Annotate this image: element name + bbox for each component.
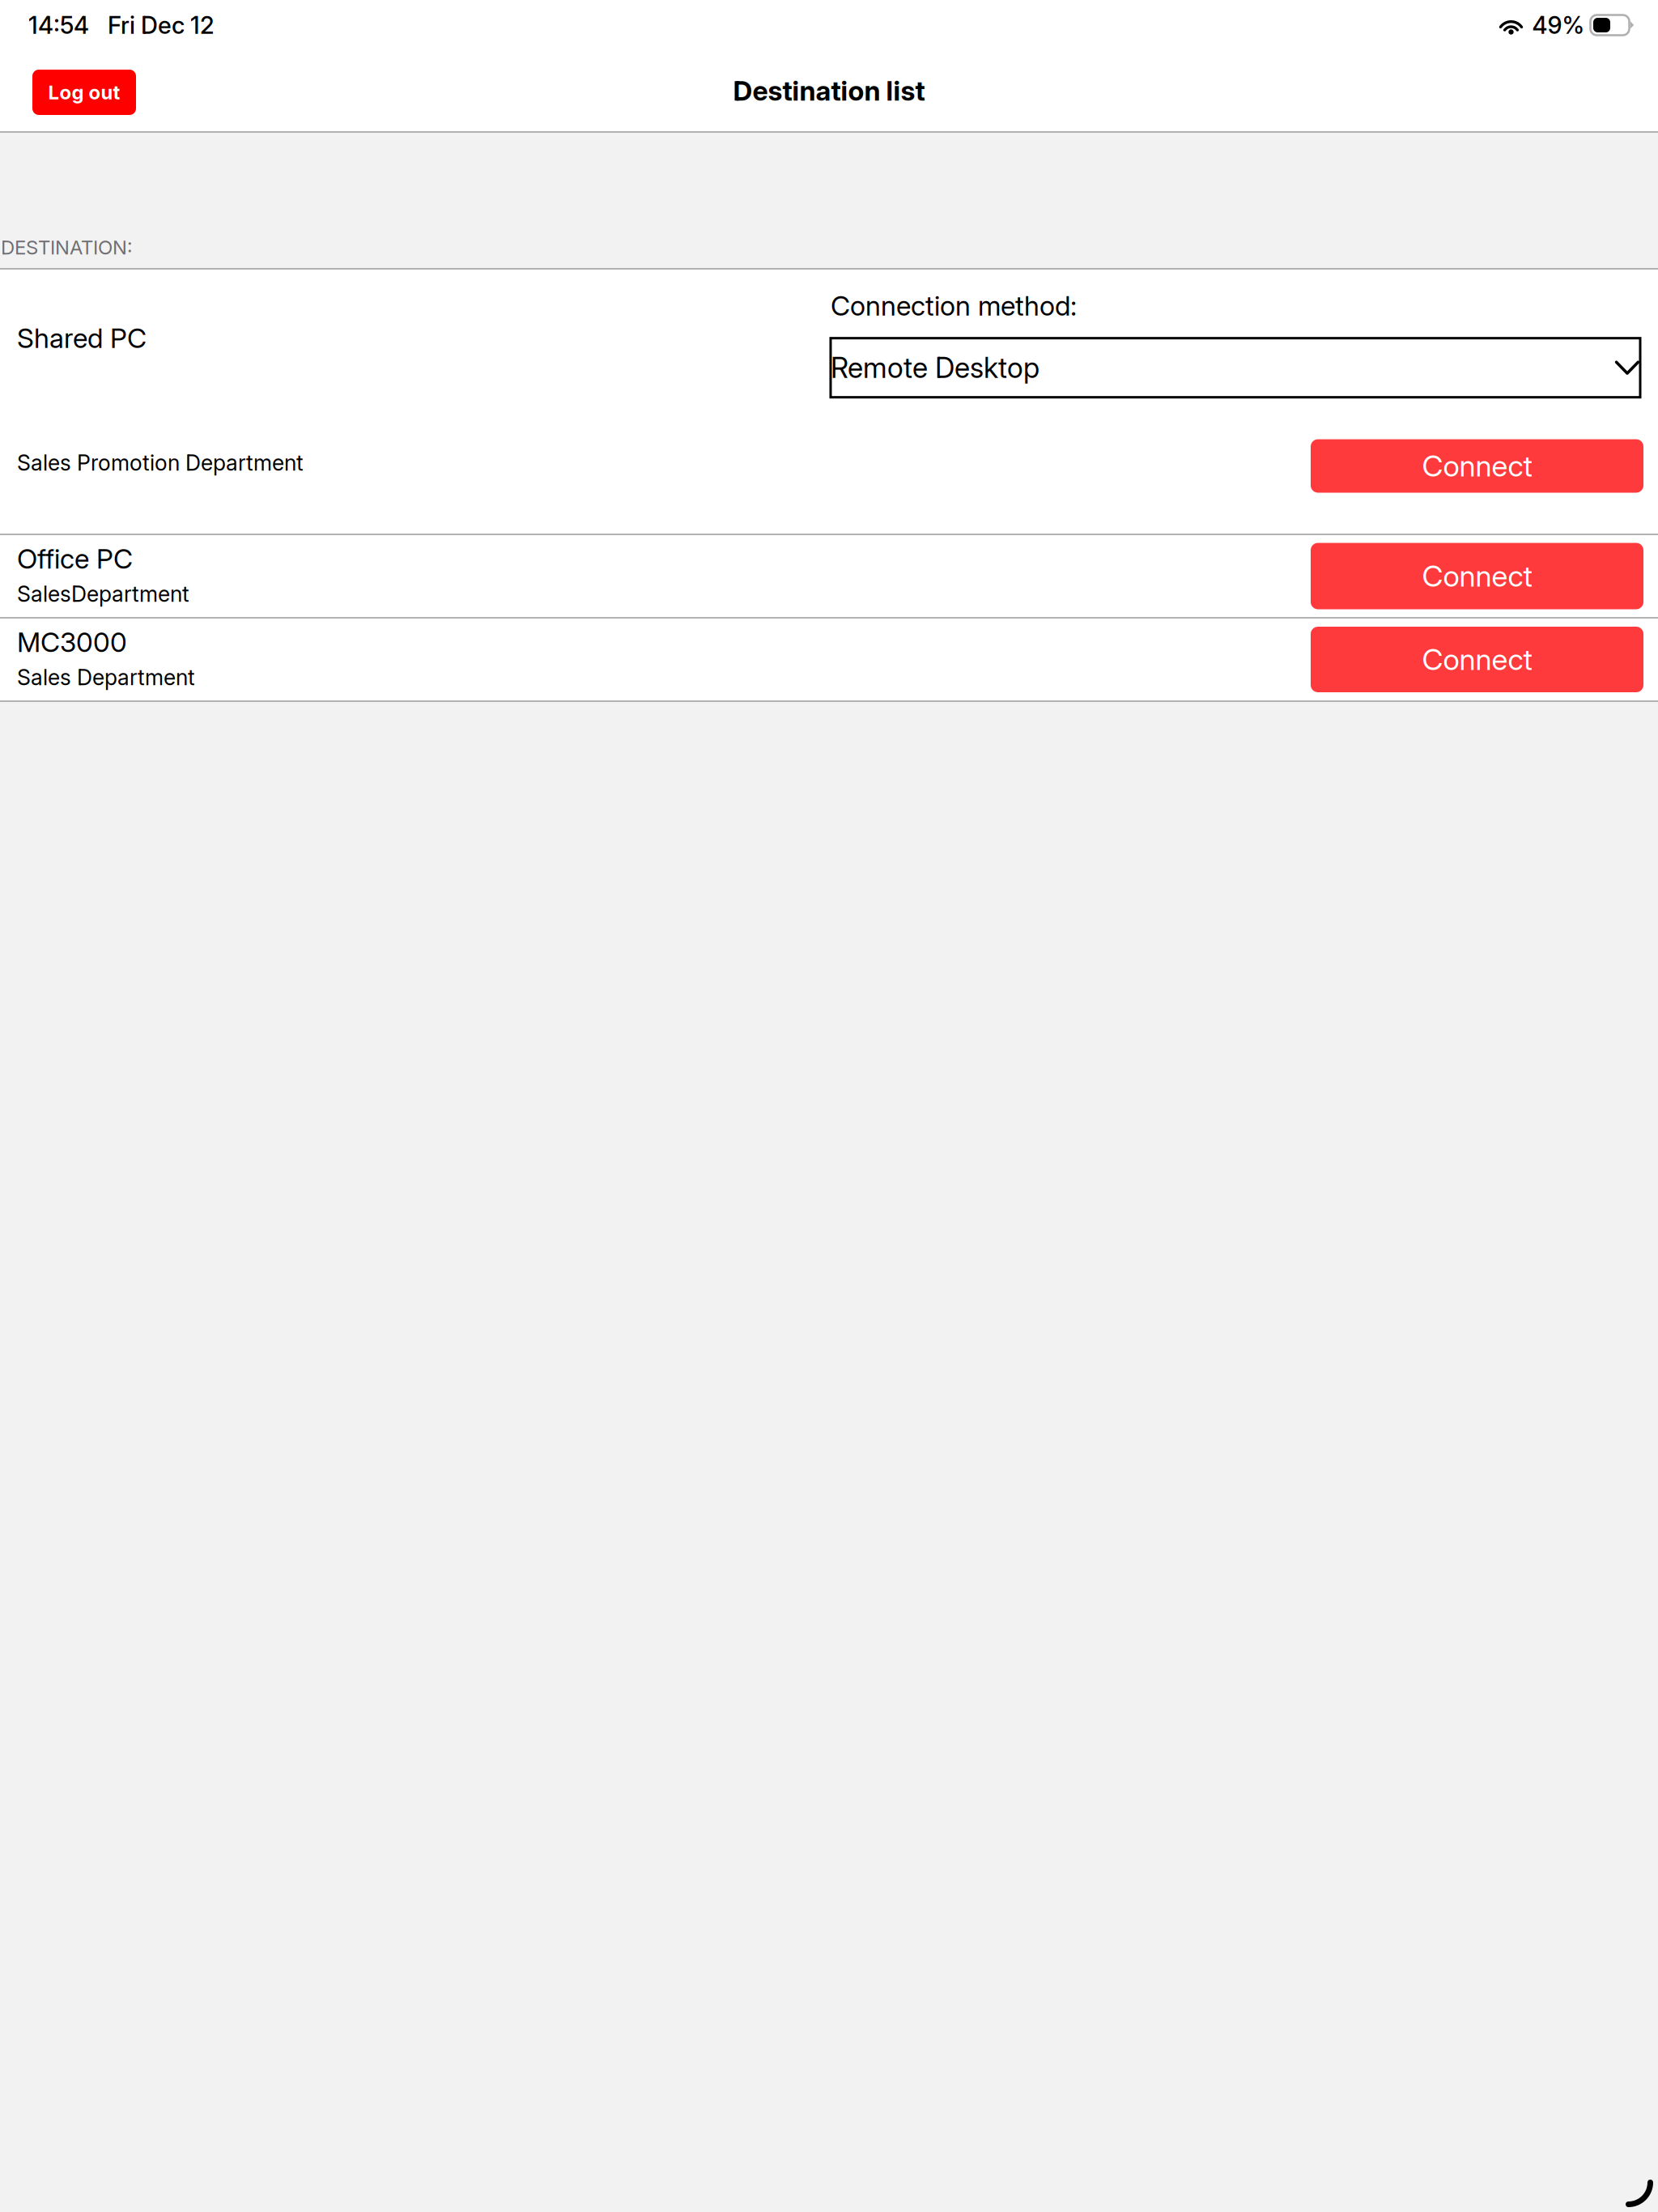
staticText: Sales Promotion Department: [17, 450, 304, 476]
staticText: Log out: [48, 81, 120, 104]
button[interactable]: Log out: [32, 70, 136, 115]
staticText: Office PC: [17, 542, 133, 575]
staticText: 14:54: [28, 11, 89, 40]
button[interactable]: Connect: [1311, 543, 1643, 609]
button[interactable]: Remote Desktop: [831, 338, 1640, 397]
button[interactable]: Connect: [1311, 439, 1643, 493]
staticText: Shared PC: [17, 322, 147, 354]
button[interactable]: Connect: [1311, 627, 1643, 692]
staticText: Destination list: [733, 74, 925, 107]
staticText: Connect: [1422, 448, 1532, 484]
staticText: MC3000: [17, 626, 127, 658]
staticText: Sales Department: [17, 664, 195, 690]
staticText: SalesDepartment: [17, 581, 189, 607]
staticText: Remote Desktop: [831, 351, 1039, 385]
staticText: Connection method:: [831, 289, 1077, 322]
staticText: Connect: [1422, 642, 1532, 677]
staticText: 49%: [1532, 11, 1585, 40]
staticText: Connect: [1422, 558, 1532, 594]
staticText: DESTINATION:: [1, 236, 133, 259]
staticText: Fri Dec 12: [108, 11, 215, 40]
